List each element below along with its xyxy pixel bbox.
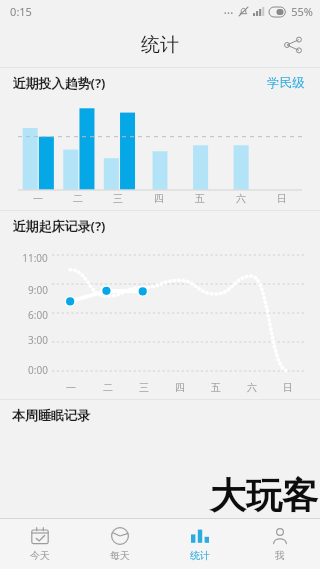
staticText: 本周睡眠记录 [12,407,90,423]
staticText: 五 [195,192,205,205]
staticText: 二 [73,192,83,205]
staticText: 0:15 [10,4,32,19]
staticText: 三 [139,381,149,394]
staticText: 六 [247,381,257,394]
button[interactable]: 我 [240,519,320,569]
staticText: 每天 [110,549,130,562]
staticText: 日 [277,192,287,205]
staticText: 0:00 [28,363,48,377]
staticText: 三 [113,192,123,205]
staticText: 55% [291,4,313,19]
staticText: 六 [236,192,246,205]
staticText: 近期起床记录(?) [12,217,106,235]
staticText: 一 [66,381,76,394]
button[interactable]: 每天 [80,519,160,569]
staticText: 五 [211,381,221,394]
staticText: 11:00 [22,251,48,265]
staticText: 6:00 [28,308,48,322]
button[interactable]: Share [276,28,310,62]
button[interactable]: 统计 [160,519,240,569]
staticText: 我 [275,549,285,562]
staticText: 一 [33,192,43,205]
staticText: 二 [103,381,113,394]
staticText: 9:00 [28,283,48,297]
staticText: 统计 [141,33,179,57]
staticText: 学民级 [267,75,305,91]
staticText: 四 [175,381,185,394]
staticText: 3:00 [28,333,48,347]
staticText: 日 [283,381,293,394]
button[interactable]: 学民级 [264,72,308,94]
staticText: 今天 [30,549,50,562]
staticText: 统计 [190,549,210,562]
staticText: 大玩客 [210,473,318,518]
staticText: 近期投入趋势(?) [12,74,106,92]
staticText: 四 [154,192,164,205]
button[interactable]: 今天 [0,519,80,569]
